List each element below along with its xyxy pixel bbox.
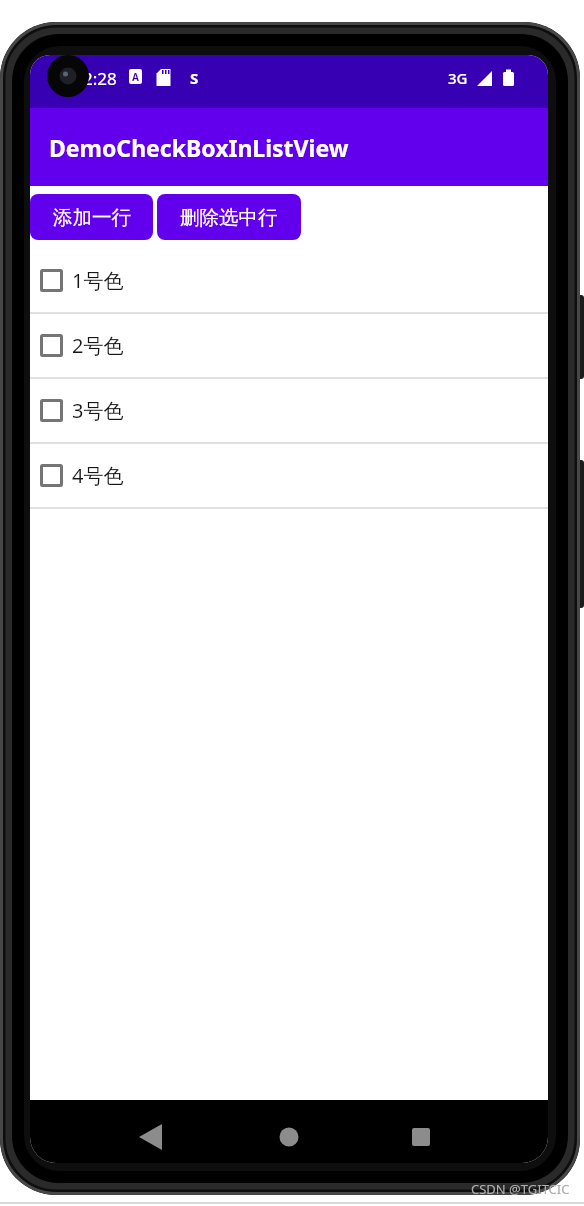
button[interactable] [40,464,63,487]
staticText: 删除选中行 [180,205,278,230]
button[interactable] [40,334,63,357]
staticText: 3号色 [72,397,124,424]
button[interactable] [271,1120,306,1155]
staticText: 1号色 [72,267,124,294]
button[interactable] [40,399,63,422]
button[interactable] [403,1120,438,1155]
button[interactable]: 4号色 [30,444,548,509]
staticText: S [190,68,199,86]
button[interactable]: 2号色 [30,314,548,379]
staticText: 3G [448,68,468,88]
staticText: 2:28 [83,67,117,90]
staticText: A [132,70,139,84]
button[interactable]: 3号色 [30,379,548,444]
staticText: 2号色 [72,332,124,359]
button[interactable] [133,1120,168,1155]
staticText: 4号色 [72,462,124,489]
button[interactable]: 1号色 [30,249,548,314]
button[interactable]: 删除选中行 [157,194,301,240]
button[interactable]: 添加一行 [30,194,153,240]
button[interactable] [40,269,63,292]
staticText: CSDN @TGITCIC [471,1180,570,1198]
staticText: 添加一行 [53,205,131,230]
staticText: DemoCheckBoxInListView [49,132,349,163]
